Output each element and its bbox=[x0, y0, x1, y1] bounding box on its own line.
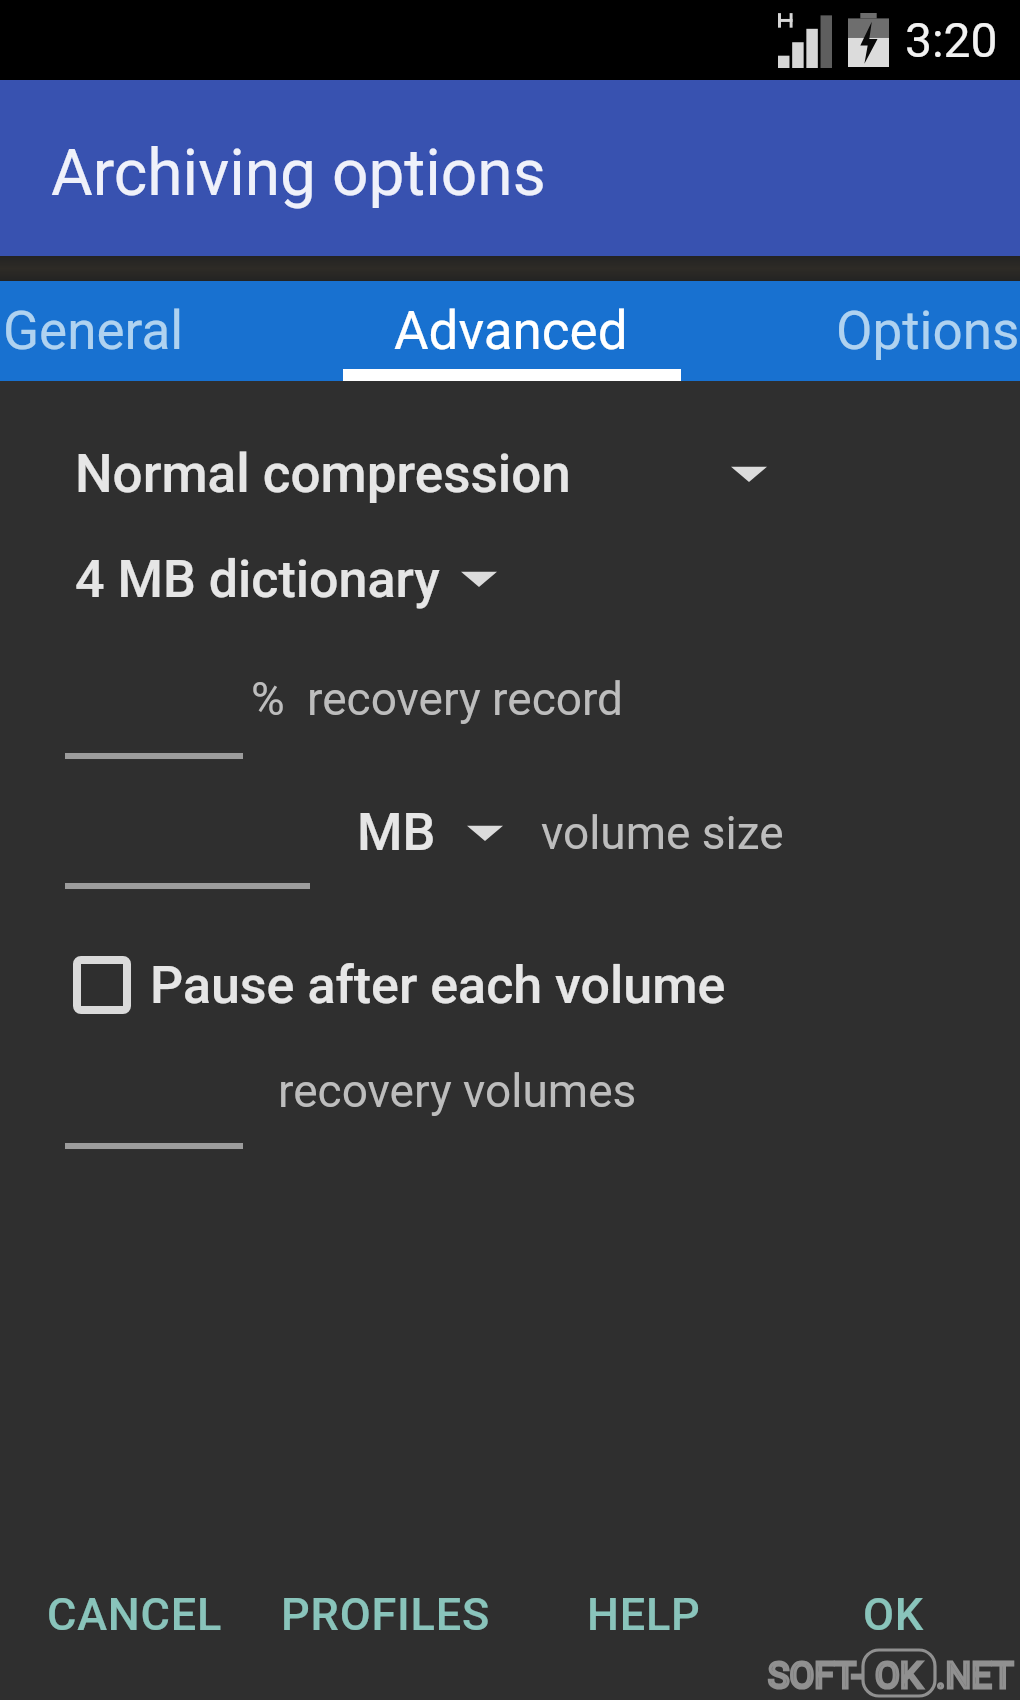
button[interactable]: Normal compression bbox=[0, 436, 1020, 512]
staticText: General bbox=[3, 300, 184, 362]
button[interactable]: 4 MB dictionary bbox=[0, 541, 1020, 617]
button[interactable]: MB bbox=[357, 802, 784, 863]
staticText: Archiving options bbox=[51, 136, 546, 211]
other: Signal strength bbox=[778, 12, 832, 68]
staticText: recovery record bbox=[307, 672, 624, 726]
button[interactable]: OK bbox=[859, 1582, 929, 1647]
staticText: 4 MB dictionary bbox=[75, 549, 440, 610]
staticText: % bbox=[251, 672, 285, 726]
staticText: recovery volumes bbox=[278, 1064, 637, 1118]
button[interactable]: PROFILES bbox=[277, 1582, 494, 1647]
staticText: Advanced bbox=[394, 300, 628, 362]
staticText: MB bbox=[357, 802, 436, 863]
button[interactable]: Recovery volumes bbox=[65, 1066, 243, 1149]
button[interactable]: General bbox=[0, 281, 302, 381]
staticText: volume size bbox=[541, 806, 784, 860]
button[interactable]: Advanced bbox=[302, 281, 720, 381]
staticText: PROFILES bbox=[281, 1588, 490, 1641]
button[interactable]: Volume size bbox=[65, 806, 310, 889]
staticText: 3:20 bbox=[905, 12, 998, 68]
other: Battery bbox=[848, 13, 889, 67]
button[interactable]: Pause after each volume bbox=[0, 944, 1020, 1026]
staticText: CANCEL bbox=[47, 1588, 223, 1641]
staticText: Options bbox=[836, 300, 1020, 362]
staticText: OK bbox=[863, 1588, 925, 1641]
staticText: Normal compression bbox=[75, 443, 571, 505]
button[interactable]: Options bbox=[719, 281, 1020, 381]
button[interactable]: CANCEL bbox=[43, 1582, 227, 1647]
button[interactable]: HELP bbox=[583, 1582, 705, 1647]
staticText: Pause after each volume bbox=[150, 955, 726, 1016]
button[interactable]: Recovery record percent bbox=[65, 676, 243, 759]
staticText: HELP bbox=[587, 1588, 701, 1641]
